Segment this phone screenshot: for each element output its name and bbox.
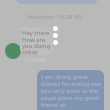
staticText: Hey there How are you doing today friend [22, 29, 52, 55]
button[interactable]: Contact avatar [5, 43, 21, 59]
staticText: 10:28 AM [24, 57, 46, 64]
button[interactable]: I am doing great thanks for asking see y… [37, 70, 104, 110]
button[interactable]: More options [52, 26, 59, 45]
button[interactable]: Hey there How are you doing today friend [20, 27, 53, 55]
staticText: I am doing great thanks for asking see y… [41, 73, 101, 109]
staticText: Yesterday 10:28 AM [0, 13, 110, 21]
